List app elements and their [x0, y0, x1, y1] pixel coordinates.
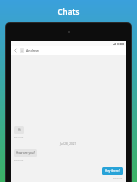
- staticText: Chats: [57, 6, 80, 17]
- button[interactable]: Back: [13, 48, 18, 53]
- staticText: 8:22 PM: [14, 158, 24, 161]
- staticText: 8:21 PM: [14, 135, 24, 138]
- button[interactable]: How are you?: [14, 149, 37, 157]
- button[interactable]: Hi: [14, 126, 24, 134]
- staticText: How are you?: [16, 151, 35, 155]
- staticText: Hey there!: [105, 169, 120, 173]
- staticText: Andrew: [26, 48, 39, 53]
- button[interactable]: Contact avatar: [20, 48, 24, 53]
- staticText: Jul 28, 2021: [60, 142, 77, 146]
- staticText: Hi: [18, 128, 21, 132]
- button[interactable]: Hey there!: [102, 167, 123, 175]
- staticText: 8:24 PM: [113, 176, 123, 179]
